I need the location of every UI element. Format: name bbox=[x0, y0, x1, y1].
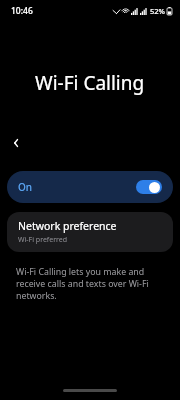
button[interactable]: Back bbox=[5, 132, 27, 154]
staticText: 52% bbox=[150, 6, 165, 16]
staticText: Wi-Fi preferred bbox=[18, 235, 68, 245]
staticText: 10:46 bbox=[11, 5, 33, 17]
staticText: Wi-Fi Calling bbox=[35, 70, 145, 96]
staticText: On bbox=[18, 180, 33, 194]
staticText: Network preference bbox=[18, 219, 117, 233]
staticText: Wi-Fi Calling lets you make and receive … bbox=[16, 266, 162, 302]
button[interactable]: On bbox=[7, 171, 173, 203]
button[interactable]: Network preference bbox=[7, 212, 173, 252]
